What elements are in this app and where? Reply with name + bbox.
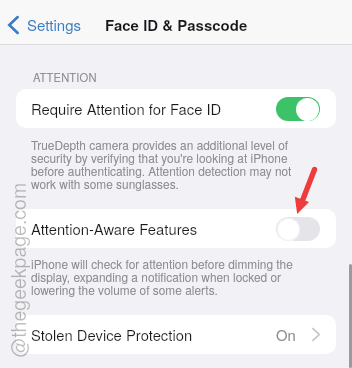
button[interactable]: Stolen Device Protection <box>16 315 336 354</box>
button[interactable]: Attention-Aware Features <box>16 209 336 248</box>
button[interactable]: Attention-Aware Features toggle <box>276 217 320 241</box>
staticText: Attention-Aware Features <box>31 218 198 239</box>
button[interactable]: Require Attention for Face ID <box>16 89 336 128</box>
staticText: TrueDepth camera provides an additional … <box>31 136 302 192</box>
other: Pointer arrow <box>0 0 352 368</box>
staticText: Require Attention for Face ID <box>31 98 222 119</box>
staticText: Face ID & Passcode <box>105 14 248 35</box>
staticText: Stolen Device Protection <box>31 324 193 345</box>
staticText: On <box>276 324 296 345</box>
staticText: iPhone will check for attention before d… <box>31 255 304 298</box>
button[interactable]: Settings <box>0 9 90 40</box>
button[interactable]: Require Attention for Face ID toggle <box>276 97 320 121</box>
staticText: @thegeekpage.com <box>3 182 31 357</box>
staticText: Settings <box>27 14 82 35</box>
staticText: ATTENTION <box>33 69 97 85</box>
